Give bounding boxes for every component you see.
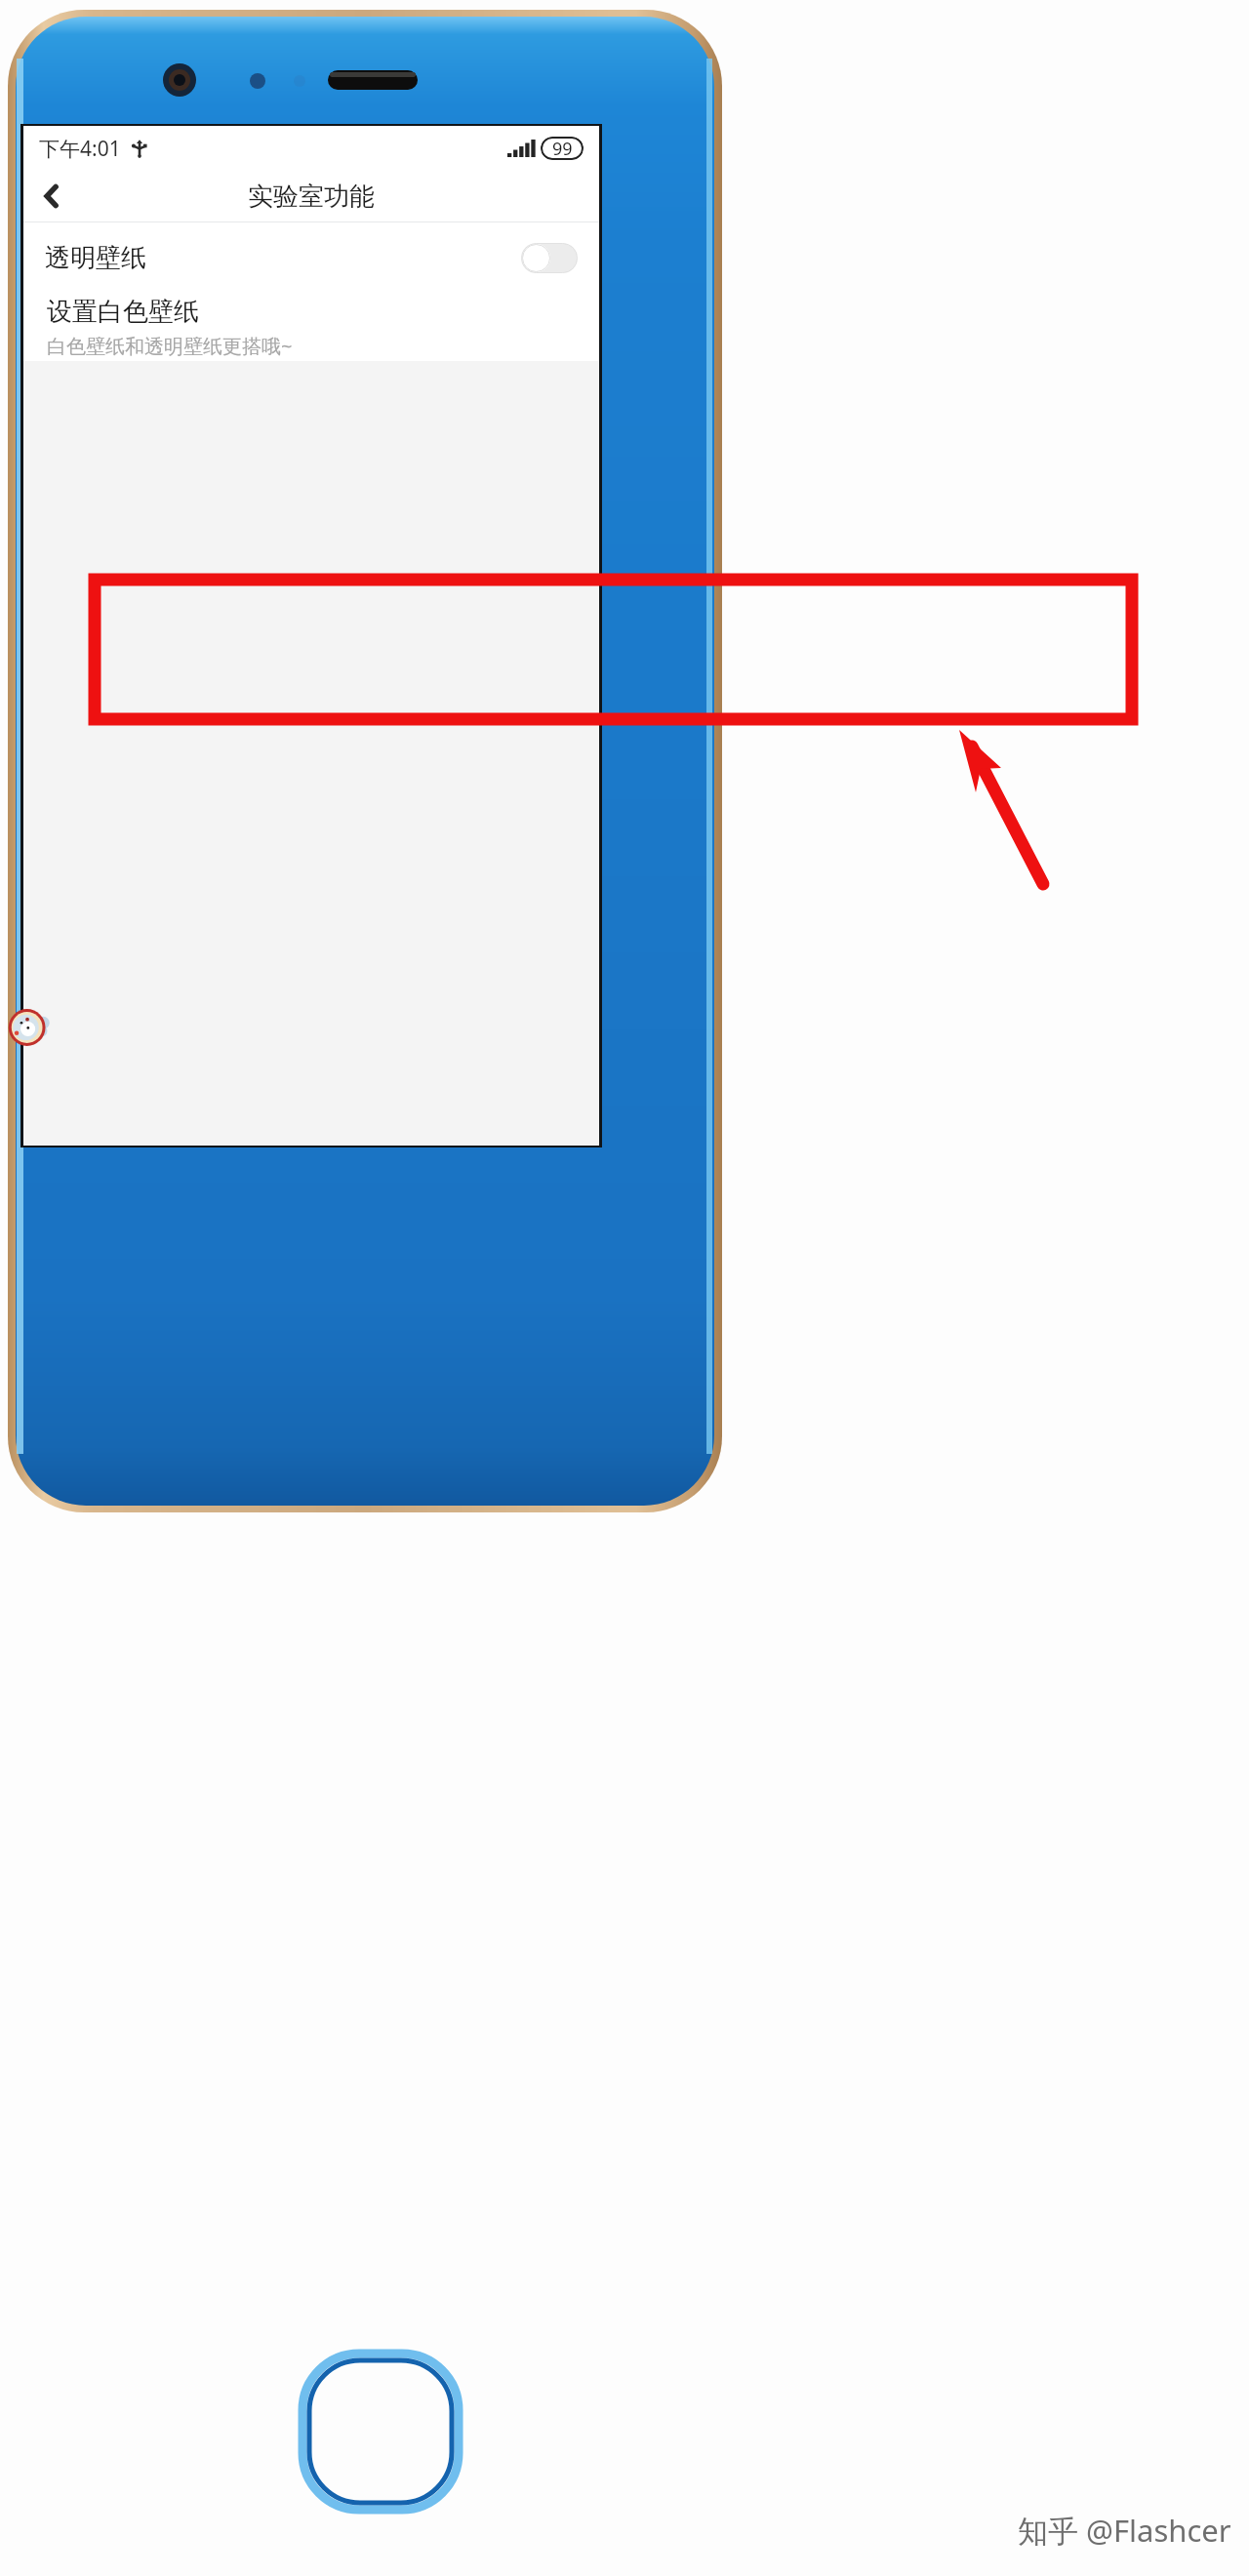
button[interactable]: 设置白色壁纸: [23, 293, 599, 361]
staticText: 实验室功能: [248, 181, 375, 213]
staticText: 设置白色壁纸: [47, 296, 199, 328]
button[interactable]: Toggle transparent wallpaper: [521, 243, 578, 273]
staticText: 透明壁纸: [45, 242, 146, 274]
button[interactable]: 透明壁纸: [23, 222, 599, 293]
staticText: 下午4:01: [39, 135, 121, 163]
staticText: 白色壁纸和透明壁纸更搭哦~: [47, 333, 293, 359]
staticText: 知乎 @Flashcer: [1018, 2510, 1231, 2551]
staticText: 99: [552, 137, 573, 160]
button[interactable]: Back: [29, 174, 74, 219]
